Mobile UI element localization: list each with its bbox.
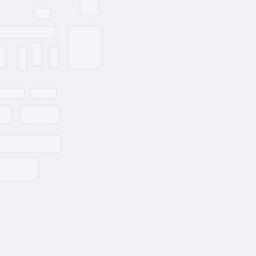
button[interactable]: Filter 2 bbox=[30, 88, 57, 99]
button[interactable]: Badge bbox=[34, 8, 51, 19]
button[interactable]: Tile bbox=[80, 0, 99, 16]
button[interactable]: Filter 4 bbox=[20, 105, 60, 124]
button[interactable]: Filter 1 bbox=[0, 88, 25, 99]
button[interactable]: Filter 3 bbox=[0, 105, 12, 124]
